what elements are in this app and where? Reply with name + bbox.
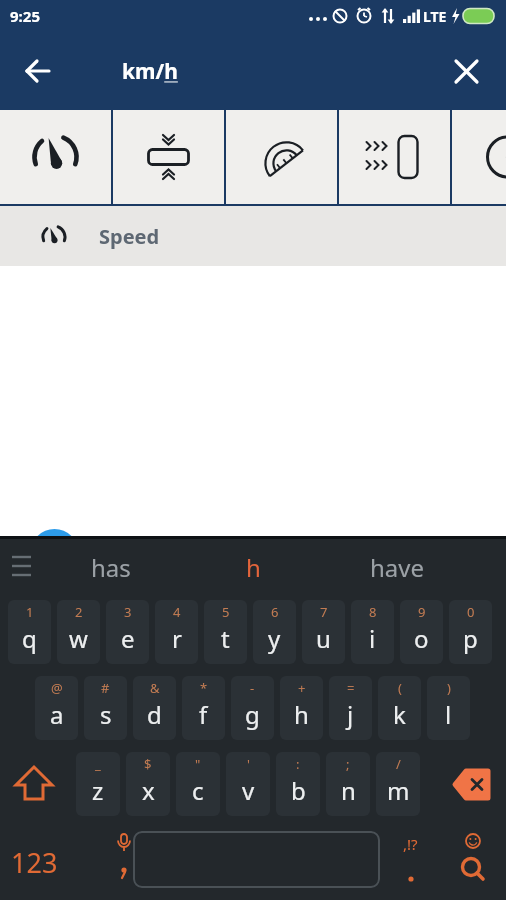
button[interactable] [133,831,380,888]
staticText: f [199,698,208,731]
staticText: 2 [75,603,83,621]
staticText: v [242,774,255,807]
button[interactable]: _ [76,752,120,816]
staticText: ( [398,679,402,697]
button[interactable] [452,110,506,204]
button[interactable]: & [133,676,176,740]
staticText: & [150,679,160,697]
button[interactable]: 123 [4,832,64,892]
staticText: 7 [320,603,328,621]
staticText: # [101,679,110,697]
staticText: 0 [467,603,475,621]
staticText: km/h [122,57,178,86]
button[interactable]: / [376,752,420,816]
staticText: 5 [222,603,230,621]
button[interactable]: : [276,752,320,816]
button[interactable]: + [280,676,323,740]
staticText: t [221,622,230,655]
staticText: : [296,755,300,773]
button[interactable] [446,828,500,892]
staticText: ; [346,755,350,773]
staticText: m [387,774,410,807]
staticText: - [250,679,255,697]
button[interactable]: 5 [204,600,247,664]
staticText: = [347,679,355,697]
staticText: ,!? [403,834,418,854]
staticText: x [142,774,155,807]
button[interactable] [226,110,337,204]
staticText: " [195,755,201,773]
button[interactable] [98,828,150,892]
staticText: LTE [423,7,447,26]
staticText: b [291,774,306,807]
staticText: 3 [124,603,132,621]
staticText: ) [447,679,451,697]
button[interactable]: 1 [8,600,51,664]
staticText: Speed [99,223,160,250]
button[interactable]: @ [35,676,78,740]
staticText: j [347,698,354,731]
staticText: has [91,551,131,584]
button[interactable] [14,47,62,95]
button[interactable] [113,110,224,204]
button[interactable]: 9 [400,600,443,664]
button[interactable] [6,756,62,812]
button[interactable]: Speed [0,206,506,266]
button[interactable]: 4 [155,600,198,664]
staticText: ' [247,755,250,773]
button[interactable] [339,110,450,204]
staticText: 8 [369,603,377,621]
button[interactable] [442,47,490,95]
button[interactable]: has [61,536,161,598]
button[interactable]: ) [427,676,470,740]
staticText: l [445,698,452,731]
staticText: _ [95,755,101,773]
staticText: h [294,698,309,731]
button[interactable]: 7 [302,600,345,664]
staticText: $ [144,755,152,773]
staticText: q [22,622,37,655]
staticText: g [245,698,260,731]
button[interactable]: * [182,676,225,740]
staticText: w [69,622,88,655]
staticText: r [172,622,182,655]
staticText: e [121,622,135,655]
staticText: o [414,622,429,655]
button[interactable]: 2 [57,600,100,664]
button[interactable] [0,110,111,204]
button[interactable]: - [231,676,274,740]
button[interactable] [444,756,502,812]
button[interactable]: ' [226,752,270,816]
staticText: h [246,551,261,584]
staticText: 1 [26,603,34,621]
button[interactable]: ,!? [384,828,436,892]
staticText: @ [51,679,63,697]
staticText: p [463,622,478,655]
staticText: * [200,679,208,697]
staticText: d [147,698,162,731]
staticText: 4 [173,603,181,621]
button[interactable]: ; [326,752,370,816]
staticText: + [298,679,306,697]
button[interactable]: have [347,536,447,598]
staticText: / [396,755,401,773]
staticText: c [192,774,204,807]
staticText: u [316,622,331,655]
staticText: a [50,698,64,731]
button[interactable]: 8 [351,600,394,664]
button[interactable]: 3 [106,600,149,664]
staticText: y [268,622,281,655]
button[interactable]: " [176,752,220,816]
button[interactable]: $ [126,752,170,816]
button[interactable]: h [203,536,303,598]
button[interactable]: 0 [449,600,492,664]
button[interactable]: = [329,676,372,740]
staticText: 9:25 [10,6,40,26]
staticText: have [370,551,425,584]
staticText: 9 [418,603,426,621]
button[interactable]: 6 [253,600,296,664]
staticText: i [369,622,376,655]
button[interactable]: # [84,676,127,740]
staticText: n [341,774,356,807]
button[interactable]: ( [378,676,421,740]
